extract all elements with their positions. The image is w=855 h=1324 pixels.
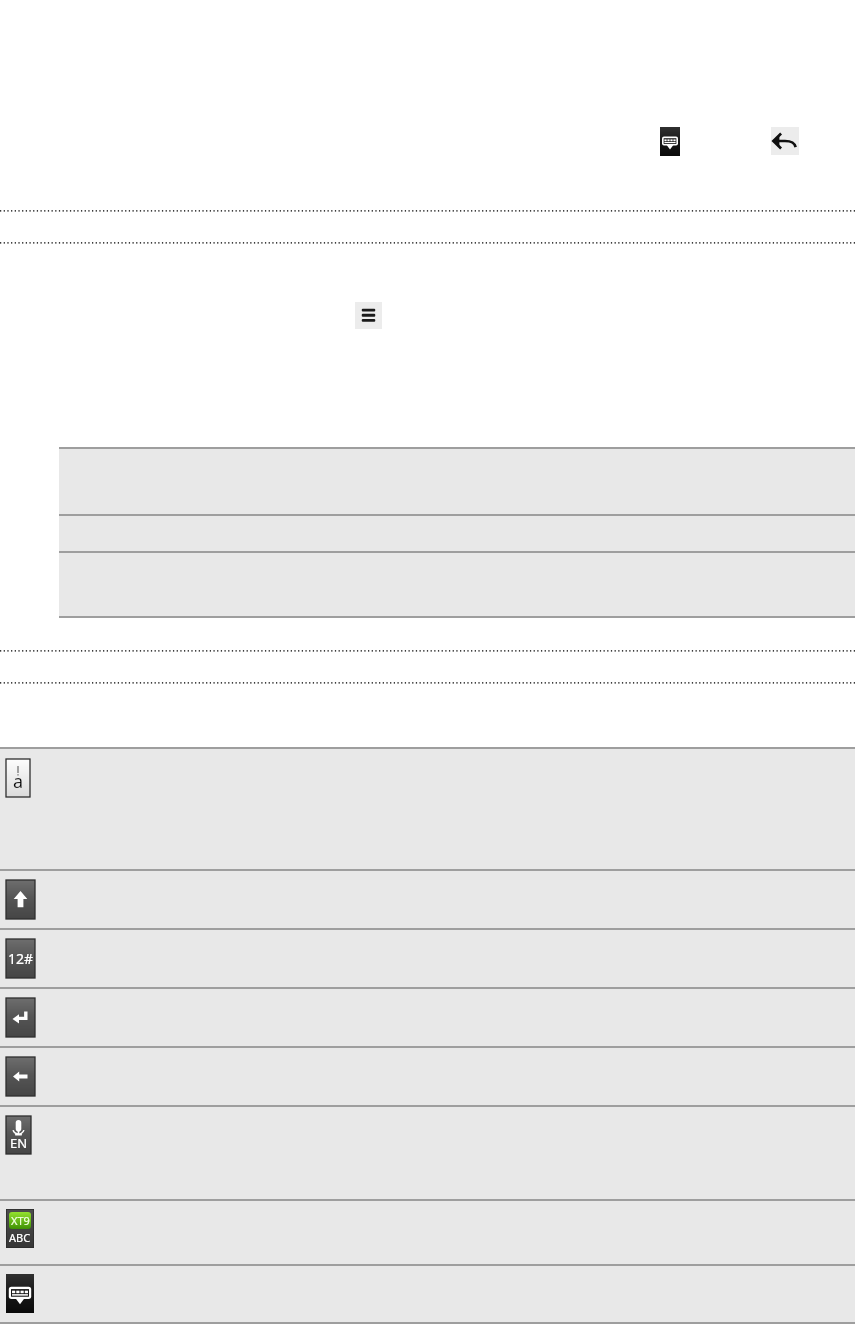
button[interactable]: Numbers and symbols key [0,928,855,987]
button[interactable]: Enter key [0,987,855,1046]
staticText: XT9 [11,1213,30,1228]
button[interactable]: Voice input key [0,1105,855,1199]
button[interactable]: Menu [355,302,382,329]
staticText: a [13,769,24,794]
staticText: ABC [9,1230,31,1245]
button[interactable]: Back [771,127,799,155]
button[interactable]: Shift key [0,869,855,928]
button[interactable]: Hide keyboard key [0,1264,855,1322]
button[interactable]: XT9 prediction key [0,1199,855,1264]
staticText: 12# [8,949,34,968]
button[interactable]: Backspace key [0,1046,855,1105]
button[interactable]: Letters and punctuation key [0,747,855,869]
staticText: EN [10,1134,28,1152]
button[interactable]: Hide keyboard [660,127,680,156]
